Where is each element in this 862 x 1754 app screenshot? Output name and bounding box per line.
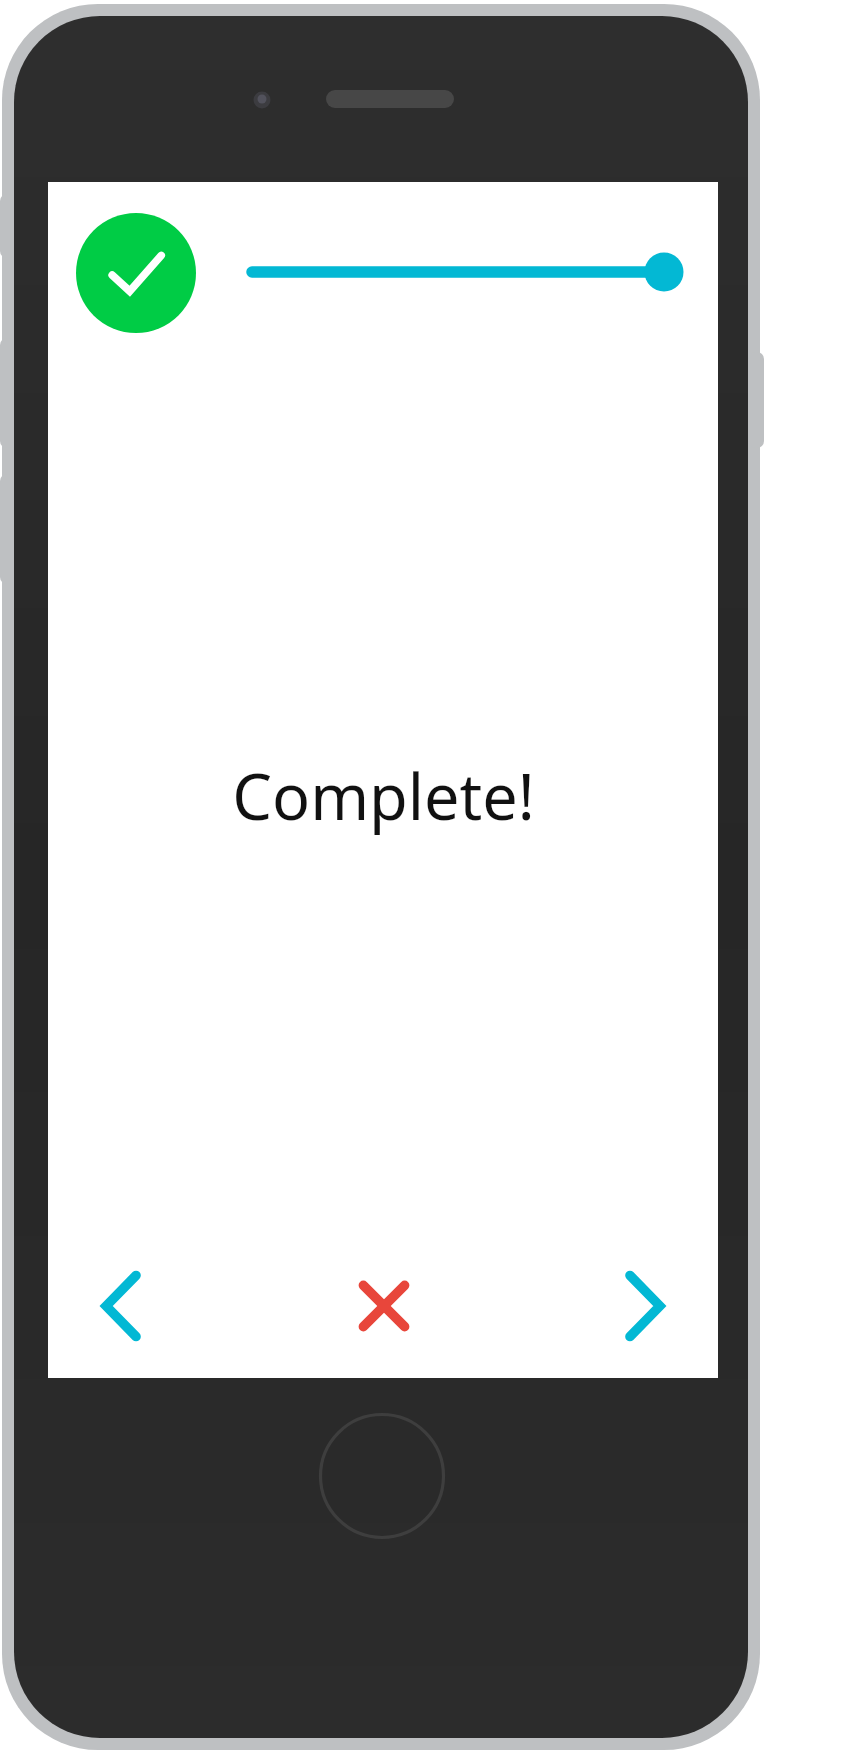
button[interactable]: Previous <box>48 1231 272 1381</box>
staticText: Complete! <box>232 753 535 839</box>
button[interactable]: Next <box>495 1231 718 1381</box>
button[interactable]: Cancel <box>272 1231 495 1381</box>
button[interactable]: Progress <box>230 236 700 308</box>
button[interactable]: Step complete <box>76 213 196 333</box>
